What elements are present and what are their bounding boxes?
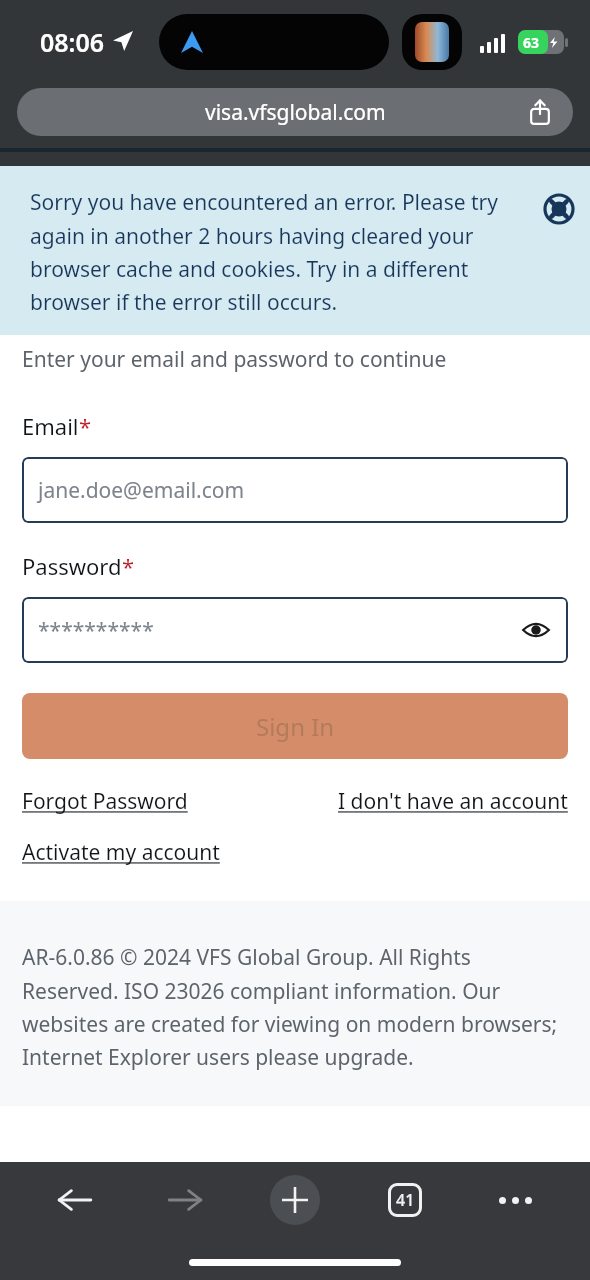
staticText: Sorry you have encountered an error. Ple… xyxy=(30,188,546,316)
button[interactable]: New tab xyxy=(240,1162,350,1238)
staticText: * xyxy=(122,551,135,581)
staticText: Password xyxy=(22,551,122,581)
staticText: 63 xyxy=(523,33,540,52)
button[interactable]: Back xyxy=(20,1162,130,1238)
button[interactable]: Show password xyxy=(518,612,554,648)
staticText: * xyxy=(79,411,92,441)
button[interactable]: Activate my account xyxy=(22,838,220,867)
staticText: I don't have an account xyxy=(338,787,568,816)
staticText: Email xyxy=(22,411,79,441)
staticText: AR-6.0.86 © 2024 VFS Global Group. All R… xyxy=(22,943,572,1071)
button[interactable]: Close xyxy=(542,192,576,226)
staticText: Forgot Password xyxy=(22,787,188,816)
staticText: Activate my account xyxy=(22,838,220,867)
staticText: visa.vfsglobal.com xyxy=(205,98,386,127)
staticText: Sign In xyxy=(256,710,335,743)
button[interactable]: Tabs xyxy=(350,1162,460,1238)
staticText: 41 xyxy=(396,1189,415,1211)
button[interactable]: Share xyxy=(523,95,557,129)
button[interactable]: Sign In xyxy=(22,693,568,759)
button[interactable]: More xyxy=(460,1162,570,1238)
button[interactable]: Forgot Password xyxy=(22,787,188,816)
button[interactable]: I don't have an account xyxy=(338,787,568,816)
button[interactable]: jane.doe@email.com xyxy=(22,457,568,523)
button[interactable]: visa.vfsglobal.com xyxy=(17,88,573,136)
staticText: Enter your email and password to continu… xyxy=(22,345,447,374)
button[interactable]: ********** xyxy=(22,597,568,663)
staticText: 08:06 xyxy=(40,25,105,59)
staticText: ********** xyxy=(38,616,154,645)
button[interactable]: Forward xyxy=(130,1162,240,1238)
staticText: jane.doe@email.com xyxy=(38,476,245,505)
